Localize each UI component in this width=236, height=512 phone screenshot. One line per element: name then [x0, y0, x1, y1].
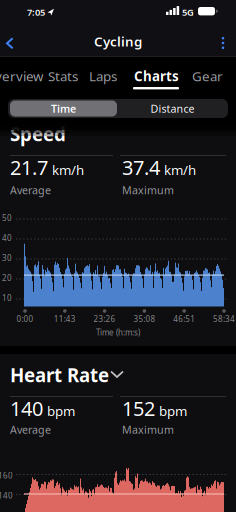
staticText: 35:08 [133, 313, 155, 324]
staticText: Speed [10, 121, 66, 146]
staticText: Gear [192, 67, 223, 85]
staticText: Laps [89, 67, 117, 85]
staticText: Overview [0, 67, 43, 85]
button[interactable]: Charts [134, 67, 180, 85]
staticText: Cycling [94, 32, 142, 50]
button[interactable]: Gear [192, 67, 224, 85]
staticText: 21.7 [10, 154, 48, 181]
button[interactable]: Back [0, 28, 22, 58]
staticText: 50 [2, 212, 12, 223]
staticText: Time [51, 101, 76, 116]
staticText: 23:26 [94, 313, 116, 324]
staticText: 20 [2, 272, 12, 283]
button[interactable]: Stats [48, 67, 82, 85]
button[interactable]: Overview [0, 67, 47, 85]
staticText: 152 [122, 395, 155, 422]
staticText: Stats [48, 67, 78, 85]
staticText: 160 [0, 470, 13, 481]
staticText: 140 [10, 395, 43, 422]
staticText: 46:51 [173, 313, 195, 324]
staticText: 30 [2, 252, 12, 263]
button[interactable]: Distance [119, 100, 226, 116]
staticText: km/h [52, 161, 84, 179]
button[interactable]: Heart Rate [10, 362, 136, 387]
staticText: bpm [47, 402, 75, 420]
staticText: Time (h:m:s) [96, 327, 140, 338]
staticText: 10 [2, 292, 12, 303]
staticText: Heart Rate [10, 362, 109, 387]
staticText: Average [10, 183, 51, 197]
staticText: 5G [182, 6, 194, 18]
staticText: 0:00 [16, 313, 33, 324]
staticText: Distance [150, 101, 194, 116]
button[interactable]: More options [210, 28, 236, 58]
staticText: 58:34 [213, 313, 235, 324]
staticText: 7:05 [27, 6, 45, 18]
staticText: 140 [0, 490, 13, 501]
staticText: Maximum [122, 183, 174, 197]
button[interactable]: Laps [89, 67, 119, 85]
staticText: 40 [2, 232, 12, 243]
staticText: bpm [159, 402, 187, 420]
button[interactable]: Time [10, 100, 117, 116]
staticText: 37.4 [122, 154, 160, 181]
staticText: Charts [134, 67, 179, 85]
staticText: Maximum [122, 422, 174, 437]
staticText: Average [10, 422, 51, 437]
staticText: 11:43 [54, 313, 76, 324]
staticText: km/h [164, 161, 196, 179]
